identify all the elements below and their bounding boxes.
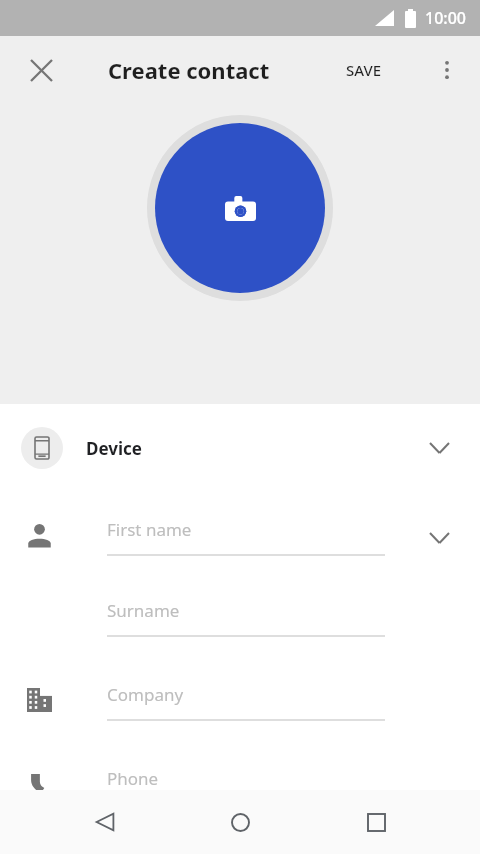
staticText: First name	[107, 518, 192, 541]
button[interactable]: Phone	[0, 757, 480, 827]
button[interactable]: Recent apps	[345, 791, 407, 853]
staticText: Surname	[107, 599, 180, 622]
button[interactable]: Surname	[0, 589, 480, 659]
button[interactable]: First name	[0, 508, 480, 578]
staticText: Device	[86, 437, 142, 460]
button[interactable]: Back	[74, 791, 136, 853]
staticText: Phone	[107, 767, 159, 790]
button[interactable]: Change account	[415, 424, 463, 472]
button[interactable]: Expand name	[416, 515, 462, 561]
staticText: SAVE	[346, 60, 382, 80]
staticText: Create contact	[108, 55, 270, 85]
staticText: 10:00	[425, 7, 466, 29]
button[interactable]: Home	[209, 791, 271, 853]
staticText: Company	[107, 683, 184, 706]
button[interactable]: SAVE	[338, 52, 390, 88]
button[interactable]: More options	[422, 45, 472, 95]
button[interactable]: Add photo	[147, 115, 333, 301]
button[interactable]: Company	[0, 673, 480, 743]
button[interactable]: Close	[14, 43, 68, 97]
button[interactable]: Device	[0, 404, 480, 492]
